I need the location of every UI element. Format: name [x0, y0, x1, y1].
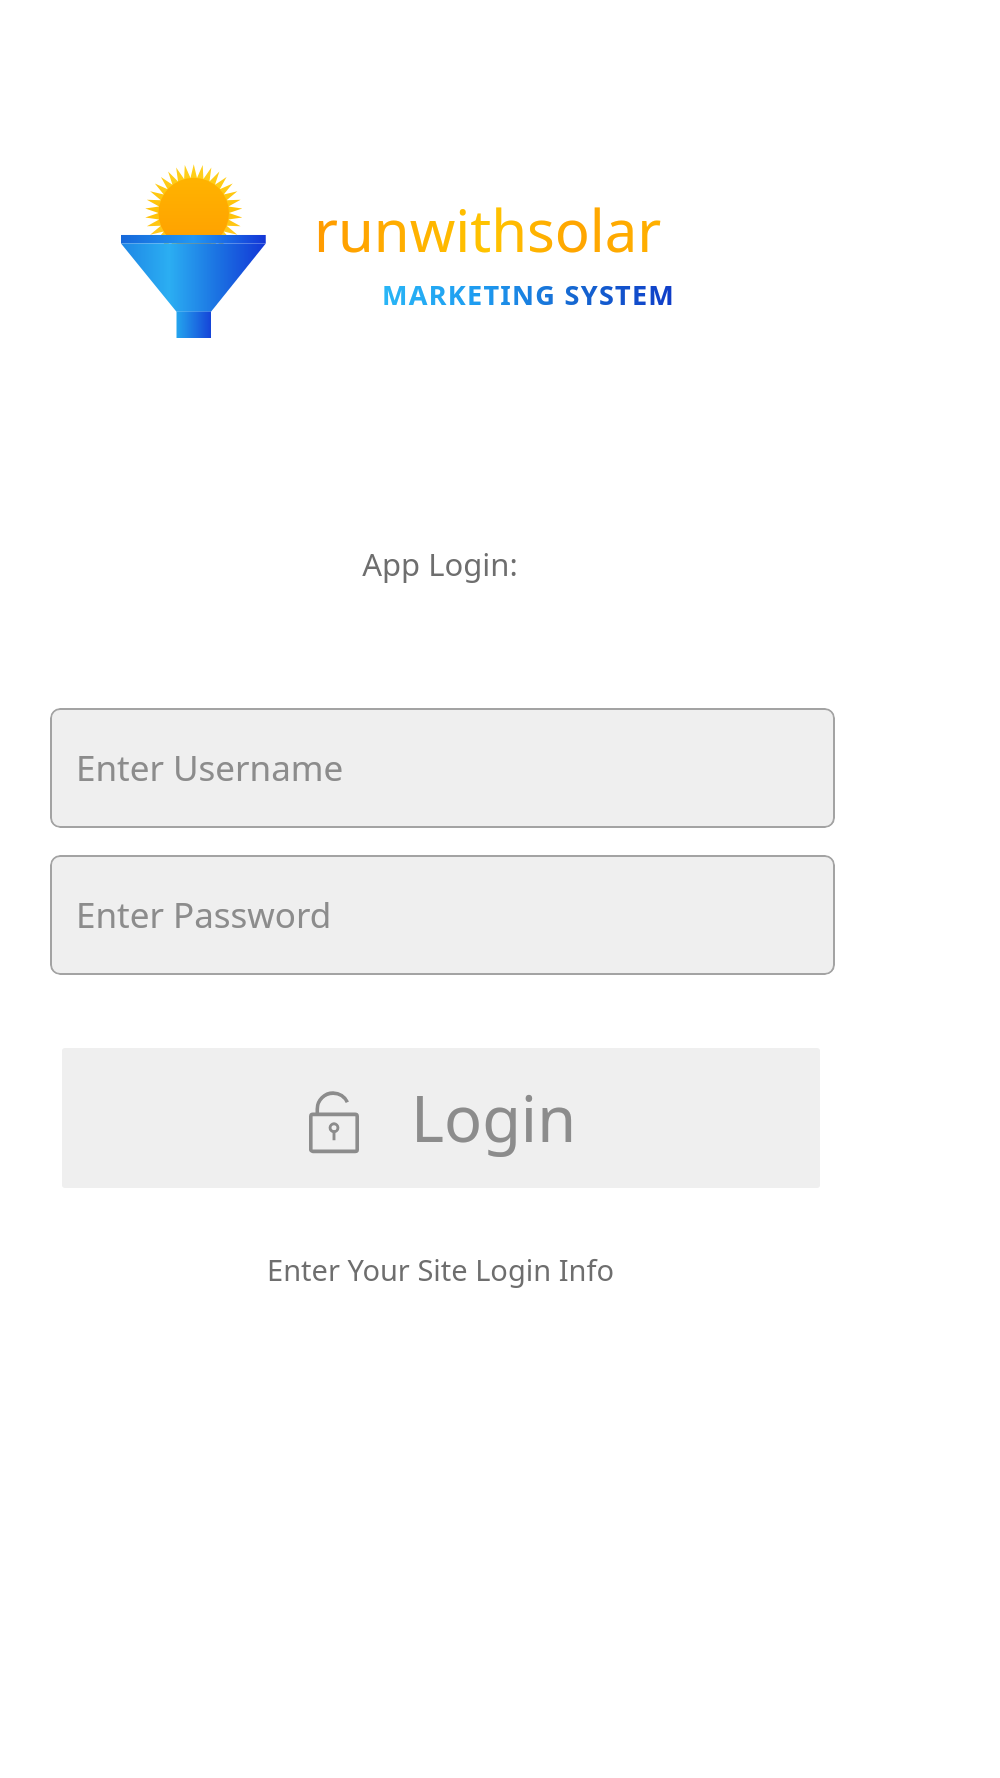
staticText: MARKETING SYSTEM	[382, 276, 676, 313]
staticText: Login	[411, 1075, 577, 1161]
button[interactable]: Enter Password	[50, 855, 835, 975]
other: Unlock	[305, 1081, 363, 1155]
staticText: App Login:	[362, 543, 518, 585]
staticText: Enter Username	[76, 744, 344, 792]
button[interactable]: Enter Username	[50, 708, 835, 828]
staticText: runwithsolar	[314, 190, 662, 269]
button[interactable]: Enter Your Site Login Info	[267, 1250, 614, 1289]
button[interactable]: Unlock	[62, 1048, 820, 1188]
staticText: Enter Password	[76, 891, 332, 939]
